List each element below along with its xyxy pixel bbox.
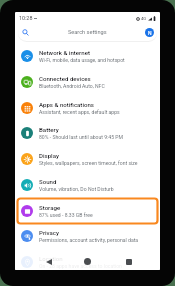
staticText: Styles, wallpapers, screen timeout, font…	[39, 160, 138, 166]
button[interactable]: Connected devices	[15, 69, 160, 95]
button[interactable]: Home	[84, 258, 91, 265]
button[interactable]: Sound	[15, 172, 160, 198]
staticText: Search settings	[68, 29, 107, 36]
button[interactable]: Back	[46, 259, 52, 265]
staticText: Privacy	[39, 229, 60, 236]
button[interactable]: Battery	[15, 120, 160, 146]
staticText: 87% used - 8.33 GB free	[39, 212, 93, 218]
button[interactable]: Search settings	[18, 24, 157, 41]
button[interactable]: Display	[15, 146, 160, 172]
staticText: On - 28 apps have access to location	[39, 263, 122, 269]
staticText: Permissions, account activity, personal …	[39, 237, 139, 243]
staticText: Sound	[39, 178, 57, 185]
staticText: Volume, vibration, Do Not Disturb	[39, 186, 114, 192]
staticText: Storage	[39, 204, 61, 211]
staticText: Apps & notifications	[39, 101, 94, 108]
staticText: 80% - Should last until about 9:45 PM	[39, 134, 123, 140]
staticText: Assistant, recent apps, default apps	[39, 109, 120, 115]
staticText: Bluetooth, Android Auto, NFC	[39, 83, 105, 89]
staticText: 10:28	[19, 15, 33, 21]
staticText: Battery	[39, 126, 59, 133]
button[interactable]: Storage	[15, 198, 160, 224]
button[interactable]: Privacy	[15, 223, 160, 249]
button[interactable]: Apps & notifications	[15, 95, 160, 121]
staticText: Display	[39, 152, 59, 159]
staticText: N	[148, 30, 152, 36]
button[interactable]: Account	[145, 28, 154, 37]
staticText: 4G	[141, 16, 147, 21]
button[interactable]: Recent apps	[126, 259, 132, 265]
staticText: Network & internet	[39, 49, 90, 56]
button[interactable]: Network & internet	[15, 43, 160, 69]
staticText: Wi-Fi, mobile, data usage, and hotspot	[39, 57, 125, 63]
staticText: Connected devices	[39, 75, 91, 82]
staticText: Location	[39, 255, 63, 262]
button[interactable]: Location	[15, 249, 160, 270]
